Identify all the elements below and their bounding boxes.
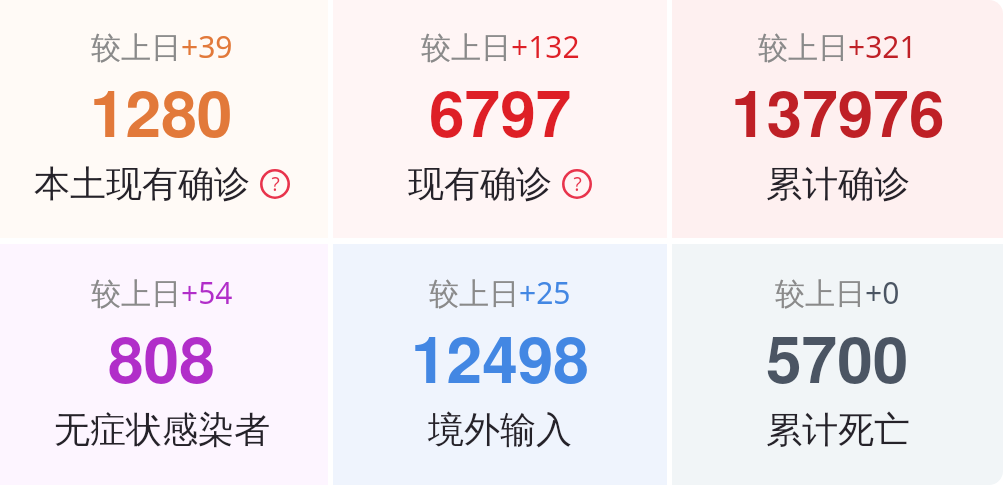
staticText: ? — [271, 171, 280, 197]
staticText: 137976 — [731, 65, 945, 157]
button[interactable]: 较上日+321 — [672, 0, 1003, 238]
staticText: 较上日+321 — [758, 26, 917, 67]
staticText: 现有确诊 — [408, 161, 552, 206]
staticText: 较上日+0 — [775, 272, 900, 313]
staticText: 累计确诊 — [766, 161, 910, 206]
button[interactable]: 较上日+25 — [333, 244, 667, 485]
staticText: 较上日+39 — [91, 26, 233, 67]
button[interactable]: 较上日+39 — [0, 0, 328, 238]
staticText: 5700 — [766, 311, 909, 403]
staticText: 本土现有确诊 — [34, 161, 250, 206]
staticText: 境外输入 — [428, 407, 572, 452]
staticText: 较上日+132 — [421, 26, 580, 67]
staticText: 12498 — [411, 311, 589, 403]
staticText: 1280 — [90, 65, 233, 157]
button[interactable]: 较上日+0 — [672, 244, 1003, 485]
staticText: 无症状感染者 — [54, 407, 270, 452]
staticText: 6797 — [429, 65, 572, 157]
button[interactable]: Help — [260, 169, 290, 199]
staticText: 累计死亡 — [766, 407, 910, 452]
button[interactable]: Help — [562, 169, 592, 199]
staticText: 较上日+54 — [91, 272, 233, 313]
button[interactable]: 较上日+132 — [333, 0, 667, 238]
staticText: 较上日+25 — [429, 272, 571, 313]
staticText: 808 — [108, 311, 215, 403]
staticText: ? — [573, 171, 582, 197]
button[interactable]: 较上日+54 — [0, 244, 328, 485]
